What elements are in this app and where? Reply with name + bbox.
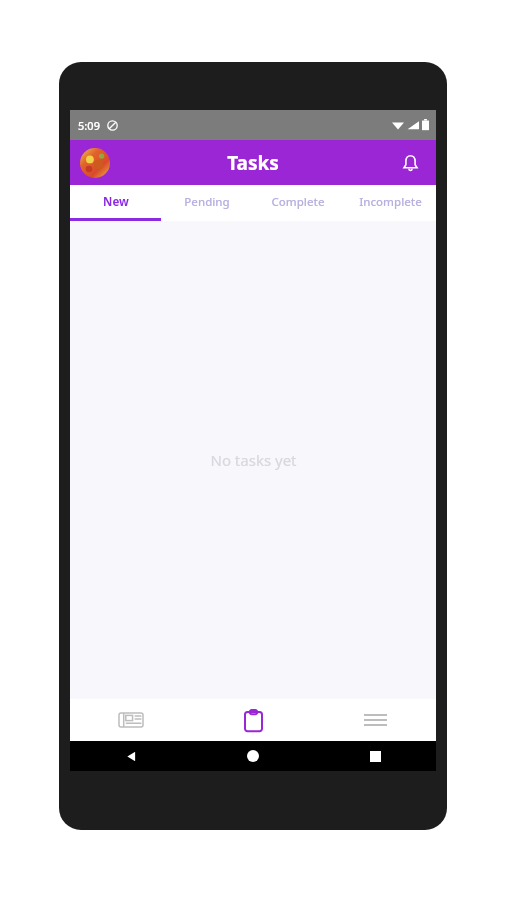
- button[interactable]: Complete: [252, 185, 344, 218]
- staticText: Tasks: [227, 150, 279, 176]
- staticText: 5:09: [78, 118, 100, 133]
- button[interactable]: Back: [70, 741, 192, 771]
- staticText: No tasks yet: [210, 450, 297, 470]
- button[interactable]: Menu: [314, 699, 436, 741]
- button[interactable]: Notifications: [392, 145, 428, 181]
- button[interactable]: Home: [192, 741, 314, 771]
- button[interactable]: Incomplete: [344, 185, 436, 218]
- staticText: New: [103, 194, 129, 210]
- staticText: Pending: [184, 194, 230, 210]
- button[interactable]: Pending: [161, 185, 252, 218]
- button[interactable]: Feed: [70, 699, 192, 741]
- button[interactable]: New: [70, 185, 161, 218]
- staticText: Complete: [271, 194, 325, 210]
- staticText: Incomplete: [359, 194, 422, 210]
- button[interactable]: Profile: [80, 148, 110, 178]
- button[interactable]: Tasks: [192, 699, 314, 741]
- button[interactable]: Recents: [314, 741, 436, 771]
